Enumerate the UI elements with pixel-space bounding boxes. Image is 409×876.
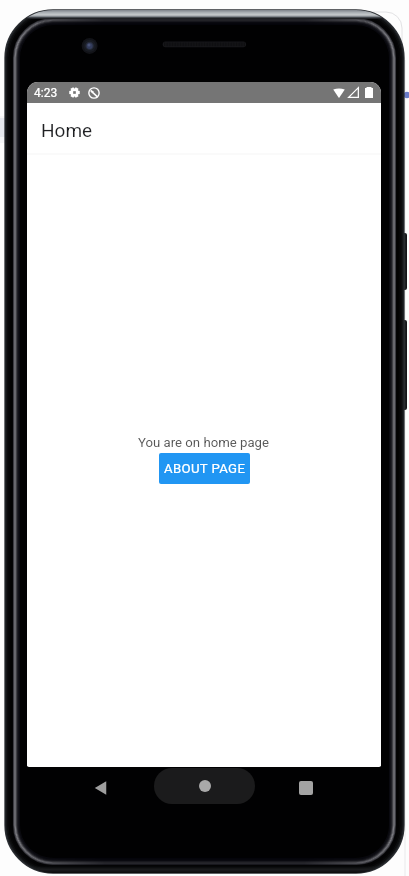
staticText: You are on home page (138, 435, 270, 450)
button[interactable]: Home (154, 768, 255, 804)
staticText: 4:23 (34, 86, 58, 100)
staticText: ABOUT PAGE (164, 461, 246, 476)
button[interactable]: ABOUT PAGE (159, 453, 250, 484)
button[interactable]: Recent apps (288, 770, 323, 805)
staticText: Home (41, 119, 93, 141)
button[interactable]: Back (83, 770, 118, 805)
